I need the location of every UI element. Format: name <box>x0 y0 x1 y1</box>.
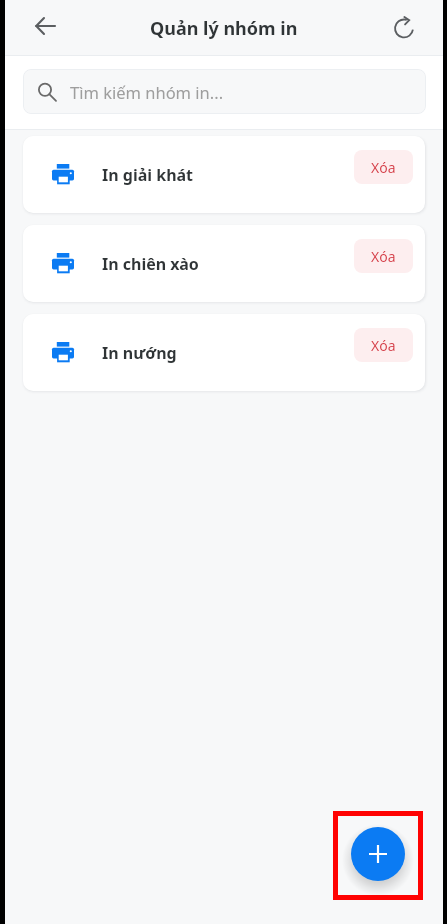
staticText: In nướng <box>102 342 177 364</box>
button[interactable]: Xóa <box>354 328 413 362</box>
button[interactable]: Xóa <box>354 150 413 184</box>
staticText: In giải khát <box>102 164 194 186</box>
staticText: Quản lý nhóm in <box>150 16 298 41</box>
button[interactable]: In giải khát <box>23 136 425 213</box>
button[interactable]: Tìm kiếm nhóm in... <box>23 69 426 114</box>
staticText: Xóa <box>371 247 396 266</box>
staticText: Tìm kiếm nhóm in... <box>70 81 224 103</box>
button[interactable]: In chiên xào <box>23 225 425 302</box>
button[interactable]: In nướng <box>23 314 425 391</box>
staticText: Xóa <box>371 336 396 355</box>
button[interactable]: Back <box>26 7 64 45</box>
staticText: Xóa <box>371 158 396 177</box>
button[interactable]: Add <box>351 827 405 881</box>
button[interactable]: Xóa <box>354 239 413 273</box>
button[interactable]: Refresh <box>385 9 423 47</box>
staticText: In chiên xào <box>102 253 199 275</box>
